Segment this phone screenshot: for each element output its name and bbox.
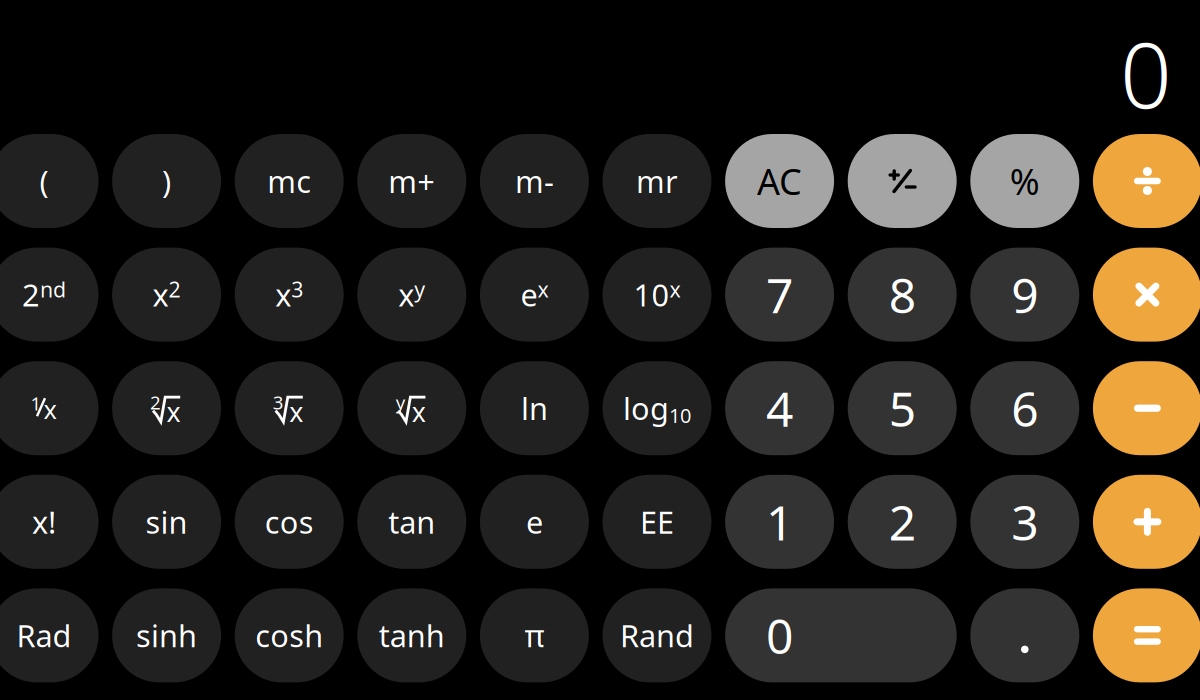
button[interactable] [235, 248, 344, 342]
button[interactable] [725, 475, 834, 569]
staticText: 1 [766, 490, 793, 554]
button[interactable] [357, 588, 466, 682]
button[interactable]: Square root of x [112, 361, 221, 455]
staticText: Rad [16, 615, 71, 656]
button[interactable]: Divide [1093, 134, 1200, 228]
staticText: x [412, 394, 426, 429]
staticText: ex [520, 274, 548, 315]
button[interactable] [970, 134, 1079, 228]
button[interactable] [235, 588, 344, 682]
button[interactable] [848, 475, 957, 569]
staticText: 6 [1011, 376, 1038, 440]
staticText: xy [398, 274, 425, 315]
button[interactable] [112, 134, 221, 228]
button[interactable]: Plus [1093, 475, 1200, 569]
button[interactable]: Equals [1093, 588, 1200, 682]
staticText: 0 [1120, 13, 1172, 133]
staticText: AC [757, 157, 802, 205]
staticText: cosh [255, 615, 323, 656]
staticText: x! [32, 501, 56, 542]
button[interactable] [848, 248, 957, 342]
staticText: 7 [766, 263, 793, 326]
button[interactable] [970, 361, 1079, 455]
button[interactable] [725, 248, 834, 342]
button[interactable] [0, 134, 98, 228]
staticText: x [167, 394, 181, 429]
staticText: x [289, 394, 303, 429]
button[interactable] [112, 588, 221, 682]
button[interactable] [357, 134, 466, 228]
button[interactable]: One over x [0, 361, 98, 455]
staticText: m+ [388, 161, 435, 201]
staticText: mc [267, 161, 311, 201]
button[interactable]: Multiply [1093, 248, 1200, 342]
button[interactable] [235, 134, 344, 228]
staticText: 2 [150, 390, 161, 415]
staticText: 1 [30, 391, 41, 416]
staticText: x2 [153, 274, 181, 315]
staticText: x [43, 392, 56, 426]
staticText: tanh [379, 615, 445, 656]
staticText: log10 [623, 388, 691, 429]
button[interactable]: y-th root of x [357, 361, 466, 455]
button[interactable] [602, 361, 711, 455]
button[interactable] [725, 134, 834, 228]
staticText: 3 [273, 390, 284, 415]
button[interactable] [970, 475, 1079, 569]
staticText: x3 [275, 274, 303, 315]
staticText: EE [640, 501, 674, 542]
staticText: ) [162, 161, 171, 201]
staticText: 8 [889, 263, 916, 326]
staticText: y [396, 390, 406, 415]
staticText: 4 [766, 376, 793, 440]
button[interactable] [235, 475, 344, 569]
button[interactable]: Decimal point [970, 588, 1079, 682]
button[interactable] [725, 588, 957, 682]
button[interactable] [602, 475, 711, 569]
button[interactable]: Minus [1093, 361, 1200, 455]
button[interactable] [480, 361, 589, 455]
staticText: e [526, 501, 543, 542]
staticText: 10x [633, 274, 680, 315]
staticText: sin [146, 501, 188, 542]
button[interactable] [0, 248, 98, 342]
button[interactable] [848, 361, 957, 455]
button[interactable] [480, 475, 589, 569]
button[interactable]: Cube root of x [235, 361, 344, 455]
staticText: Rand [620, 615, 694, 656]
button[interactable] [602, 134, 711, 228]
staticText: sinh [136, 615, 197, 656]
staticText: 9 [1011, 263, 1038, 326]
staticText: cos [265, 501, 314, 542]
button[interactable] [725, 361, 834, 455]
button[interactable] [602, 588, 711, 682]
button[interactable] [357, 248, 466, 342]
button[interactable]: Plus Minus [848, 134, 957, 228]
staticText: % [1010, 157, 1040, 205]
staticText: π [524, 615, 544, 656]
button[interactable] [112, 475, 221, 569]
staticText: 2nd [22, 274, 66, 315]
button[interactable] [112, 248, 221, 342]
staticText: ( [39, 161, 48, 201]
staticText: mr [636, 161, 678, 201]
staticText: 0 [766, 603, 793, 667]
button[interactable] [480, 248, 589, 342]
staticText: tan [388, 501, 435, 542]
staticText: ln [521, 388, 548, 428]
button[interactable] [970, 248, 1079, 342]
staticText: 2 [889, 490, 916, 554]
button[interactable] [480, 134, 589, 228]
staticText: 5 [889, 376, 916, 440]
button[interactable] [0, 475, 98, 569]
staticText: 3 [1011, 490, 1038, 554]
button[interactable] [0, 588, 98, 682]
button[interactable] [602, 248, 711, 342]
button[interactable] [480, 588, 589, 682]
button[interactable] [357, 475, 466, 569]
staticText: m- [515, 161, 554, 201]
